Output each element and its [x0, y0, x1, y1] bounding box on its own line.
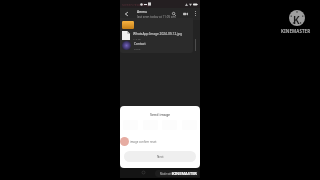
staticText: screen recording [122, 2, 149, 7]
button[interactable]: Search [168, 8, 179, 19]
button[interactable]: Contact [120, 41, 193, 50]
button[interactable]: WhatsApp Image 2024-09-12.jpg [120, 31, 193, 40]
staticText: share [134, 47, 141, 50]
button[interactable]: Next [124, 151, 196, 162]
button[interactable]: Back [121, 8, 132, 19]
button[interactable]: Video call [180, 8, 191, 19]
button[interactable]: More options [190, 8, 201, 19]
staticText: WhatsApp Image 2024-09-12.jpg [133, 32, 182, 36]
staticText: Contact [134, 42, 146, 46]
staticText: KINEMASTER [172, 171, 197, 176]
staticText: image confirm reset [130, 140, 157, 144]
staticText: KINEMASTER [281, 28, 311, 34]
staticText: Made with [160, 172, 173, 176]
staticText: 112 kB [133, 37, 141, 40]
staticText: K [293, 13, 300, 27]
staticText: last seen today at 11:05 pm [137, 15, 176, 19]
staticText: Next [157, 155, 164, 159]
staticText: Send image [150, 112, 171, 117]
staticText: Ammu [137, 10, 148, 14]
button[interactable]: Image attachment [122, 21, 134, 29]
